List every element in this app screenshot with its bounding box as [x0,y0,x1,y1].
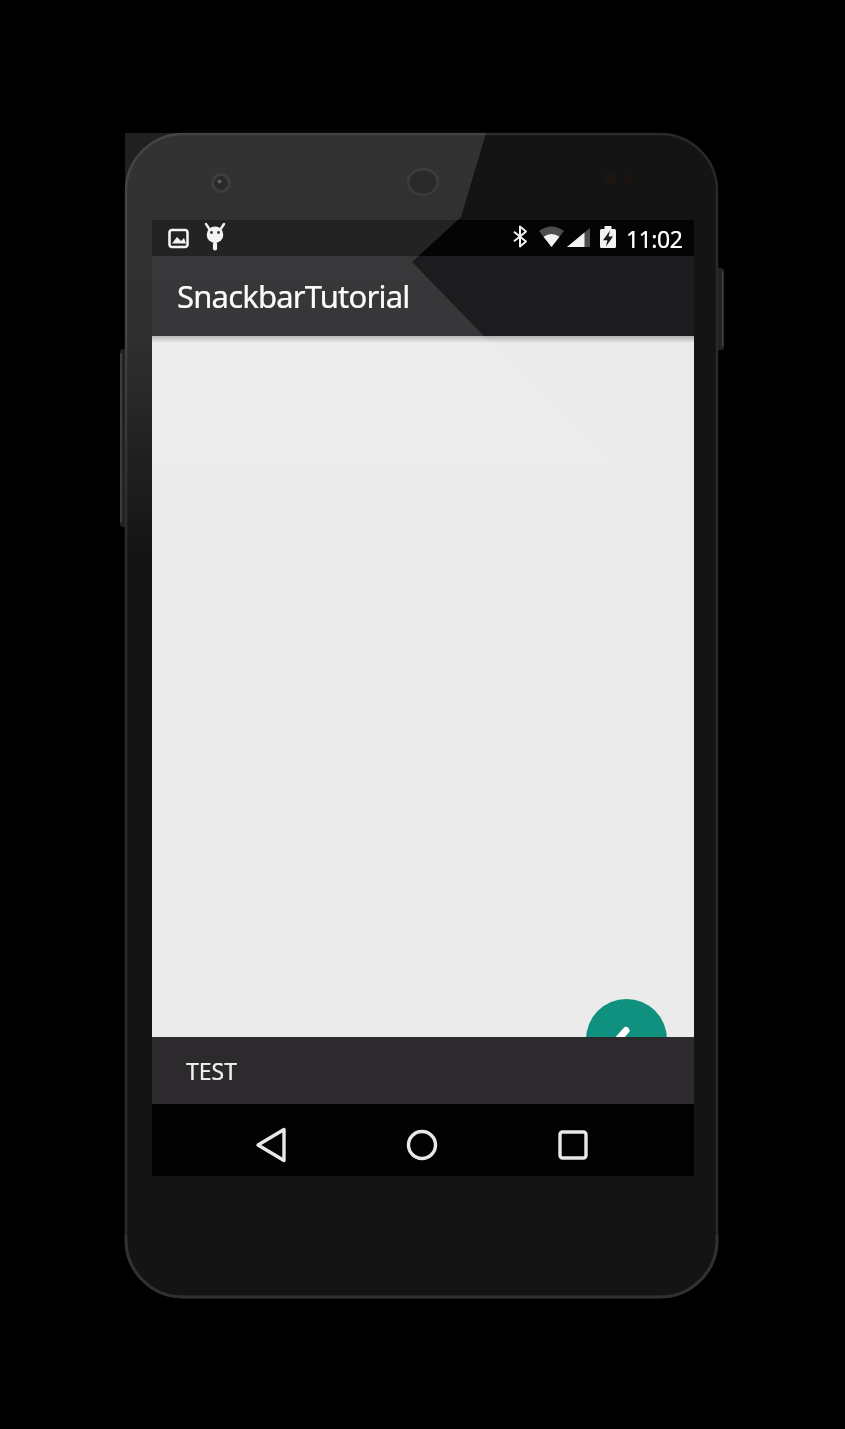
button[interactable] [537,1109,609,1181]
button[interactable]: SnackbarTutorial [152,256,694,336]
staticText: TEST [186,1055,237,1086]
staticText: 11:02 [626,223,683,254]
button[interactable] [235,1109,307,1181]
button[interactable] [386,1109,458,1181]
staticText: SnackbarTutorial [177,275,410,317]
button[interactable] [586,999,667,1080]
button[interactable]: TEST [152,1037,694,1104]
